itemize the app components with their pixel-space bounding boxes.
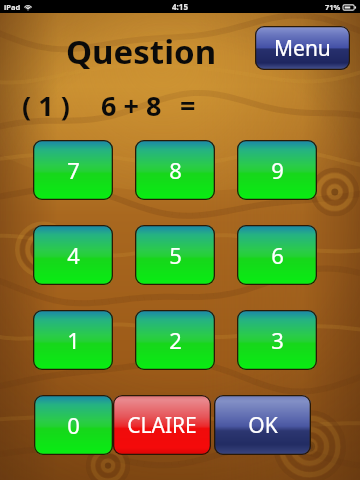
staticText: = — [180, 87, 196, 124]
staticText: 4:15 — [172, 1, 188, 12]
button[interactable]: 7 — [33, 140, 113, 200]
button[interactable]: 1 — [33, 310, 113, 370]
button[interactable]: 4 — [33, 225, 113, 285]
staticText: OK — [248, 411, 278, 440]
staticText: 5 — [169, 240, 182, 270]
staticText: 9 — [271, 155, 284, 185]
staticText: 4 — [67, 240, 80, 270]
button[interactable]: 0 — [34, 395, 113, 455]
button[interactable]: 6 — [237, 225, 317, 285]
staticText: 71% — [325, 2, 341, 12]
staticText: 2 — [169, 325, 182, 355]
staticText: CLAIRE — [127, 411, 197, 440]
button[interactable]: 9 — [237, 140, 317, 200]
staticText: 8 — [169, 155, 182, 185]
button[interactable]: 3 — [237, 310, 317, 370]
staticText: 0 — [67, 410, 80, 440]
button[interactable]: 2 — [135, 310, 215, 370]
button[interactable]: OK — [214, 395, 311, 455]
button[interactable]: 5 — [135, 225, 215, 285]
staticText: iPad — [4, 2, 21, 12]
staticText: Menu — [274, 34, 331, 63]
staticText: 3 — [271, 325, 284, 355]
staticText: 6 + 8 — [101, 87, 162, 124]
staticText: 1 — [67, 325, 80, 355]
button[interactable]: Menu — [255, 26, 350, 70]
button[interactable]: CLAIRE — [113, 395, 211, 455]
staticText: ( 1 ) — [22, 87, 70, 124]
staticText: 6 — [271, 240, 284, 270]
button[interactable]: 8 — [135, 140, 215, 200]
staticText: 7 — [67, 155, 80, 185]
staticText: Question — [66, 29, 217, 74]
